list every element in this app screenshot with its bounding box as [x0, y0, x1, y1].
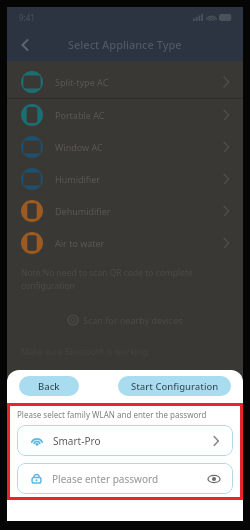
staticText: Window AC [55, 141, 103, 153]
staticText: Humidifier [55, 173, 101, 185]
button[interactable]: Smart-Pro [17, 425, 233, 456]
staticText: Start Configuration [131, 380, 219, 393]
staticText: Note:No need to scan QR code to complete… [21, 267, 193, 292]
button[interactable]: Please enter password [17, 463, 233, 494]
staticText: Portable AC [55, 109, 105, 121]
staticText: Please select family WLAN and enter the … [17, 409, 207, 420]
button[interactable]: Back [19, 376, 79, 396]
staticText: Back [38, 380, 60, 393]
staticText: Air to water [55, 237, 105, 249]
staticText: 9:41 [19, 12, 35, 23]
button[interactable]: Scan for nearby devices [7, 314, 243, 326]
staticText: Please enter password [52, 472, 159, 486]
button[interactable]: Dehumidifier [7, 195, 243, 227]
button[interactable]: Portable AC [7, 99, 243, 131]
button[interactable]: Split-type AC [7, 66, 243, 98]
staticText: Dehumidifier [55, 205, 111, 217]
button[interactable]: Show password [205, 470, 223, 488]
staticText: Select Appliance Type [68, 37, 182, 52]
staticText: Split-type AC [55, 76, 109, 88]
button[interactable]: Window AC [7, 131, 243, 163]
button[interactable]: Start Configuration [118, 376, 231, 396]
button[interactable]: Air to water [7, 227, 243, 259]
button[interactable]: Back [15, 35, 35, 55]
staticText: Scan for nearby devices [83, 314, 183, 326]
staticText: Smart-Pro [53, 434, 101, 448]
button[interactable]: Humidifier [7, 163, 243, 195]
